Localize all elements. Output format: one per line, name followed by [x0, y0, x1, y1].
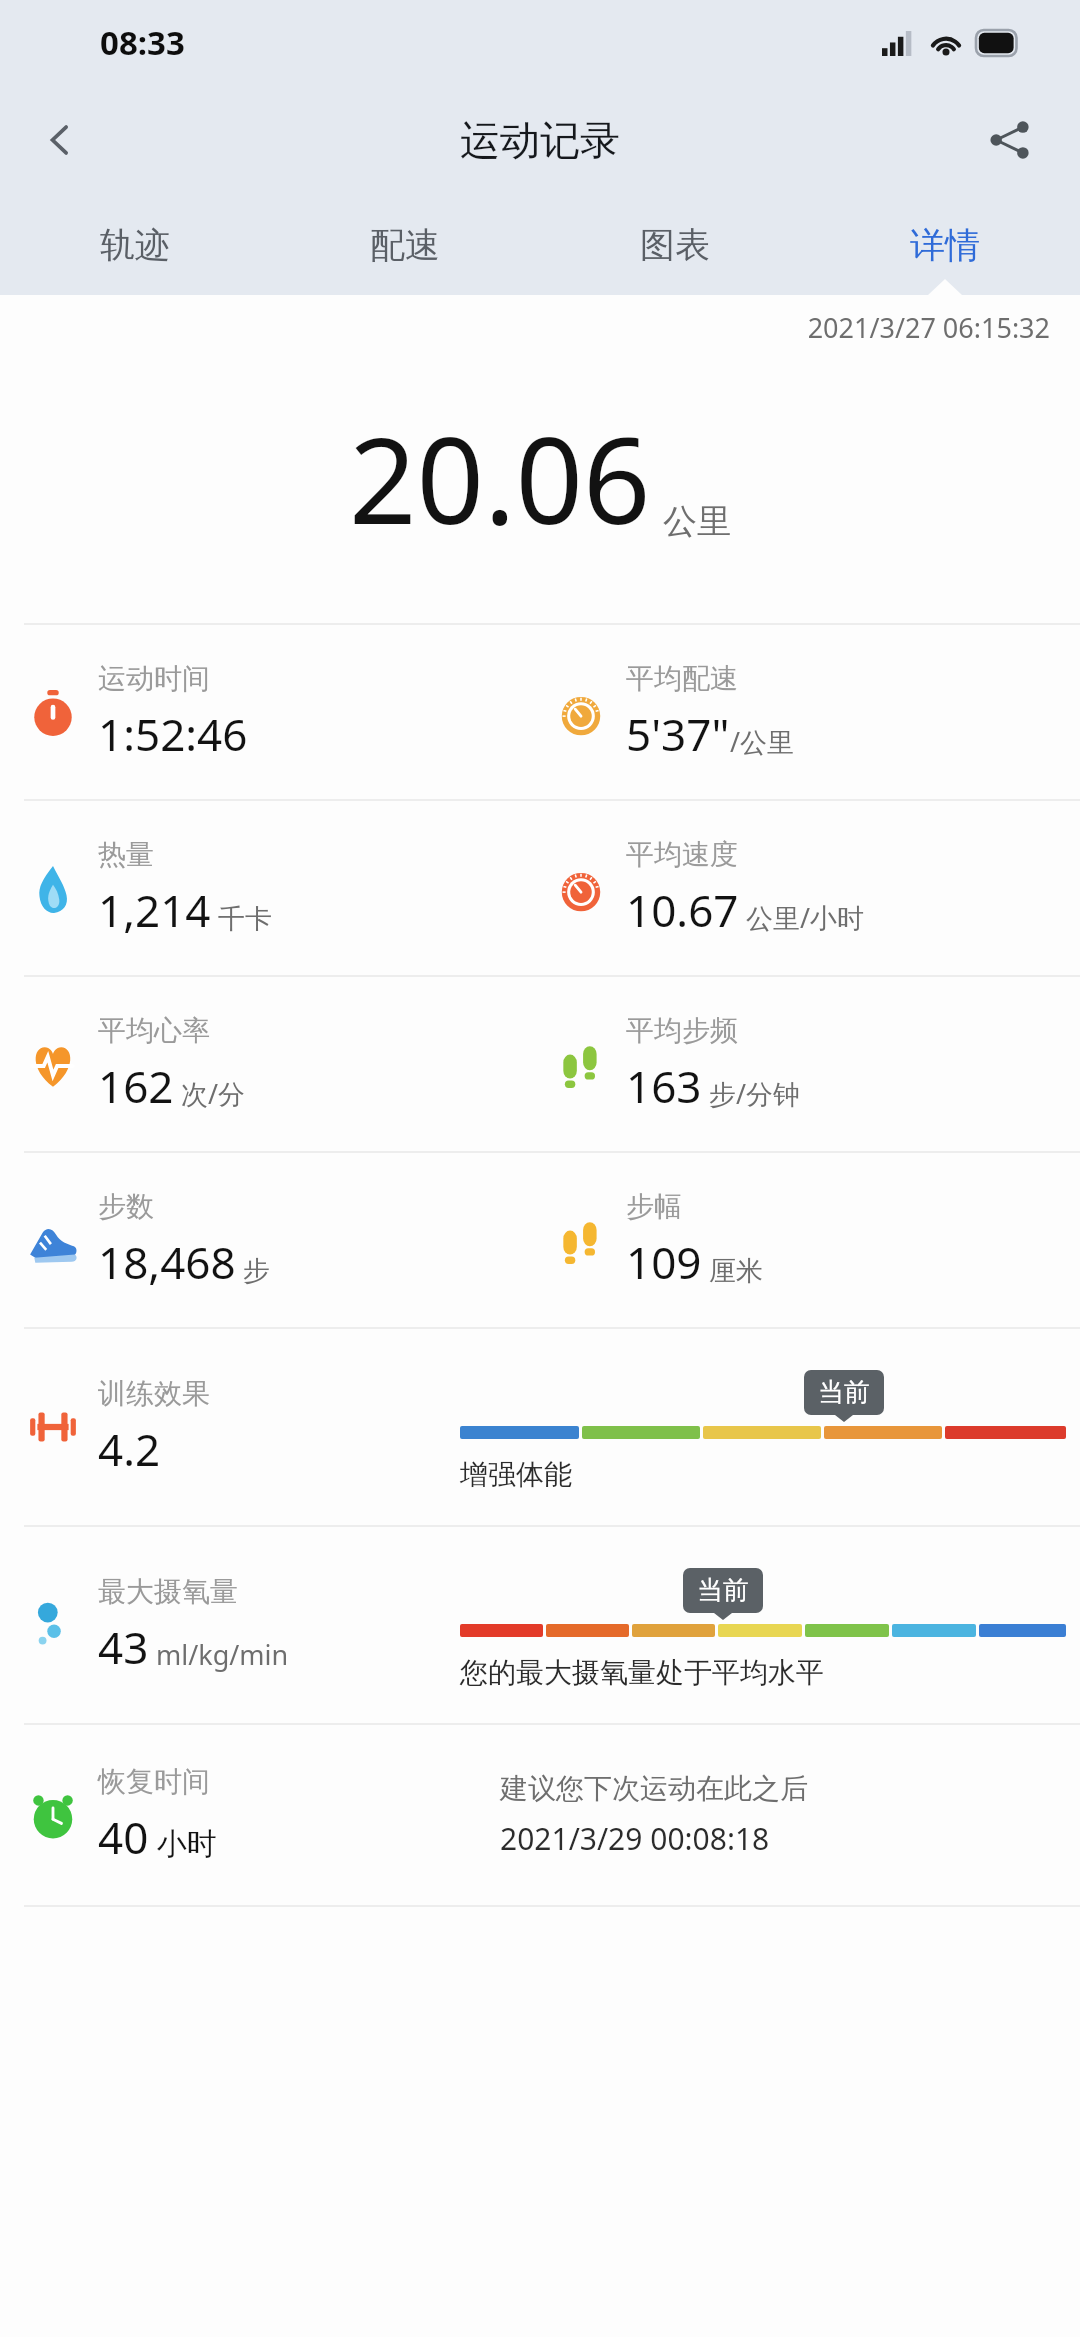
staticText: 步数 — [98, 1189, 154, 1224]
staticText: 163 — [626, 1056, 702, 1116]
button[interactable]: Back — [20, 100, 100, 180]
staticText: 最大摄氧量 — [98, 1574, 238, 1609]
button[interactable]: 轨迹 — [0, 195, 270, 295]
button[interactable]: 运动时间 — [0, 625, 1080, 799]
staticText: 公里/小时 — [739, 899, 865, 936]
staticText: 配速 — [370, 223, 440, 267]
staticText: 公里 — [663, 500, 731, 543]
button[interactable]: 最大摄氧量 — [0, 1527, 1080, 1723]
button[interactable]: 详情 — [810, 195, 1080, 295]
staticText: 千卡 — [211, 899, 273, 936]
staticText: 步/分钟 — [702, 1075, 801, 1112]
staticText: 162 — [98, 1056, 174, 1116]
staticText: 图表 — [640, 223, 710, 267]
button[interactable]: 步数 — [0, 1153, 1080, 1327]
staticText: 热量 — [98, 837, 154, 872]
staticText: 厘米 — [702, 1251, 764, 1288]
staticText: 08:33 — [100, 20, 185, 65]
button[interactable]: Share — [970, 100, 1050, 180]
staticText: 平均心率 — [98, 1013, 210, 1048]
staticText: 43 — [98, 1617, 149, 1677]
staticText: 步 — [236, 1251, 271, 1288]
staticText: 2021/3/29 00:08:18 — [500, 1818, 770, 1859]
button[interactable]: 图表 — [540, 195, 810, 295]
staticText: 平均步频 — [626, 1013, 738, 1048]
button[interactable]: 配速 — [270, 195, 540, 295]
staticText: 运动记录 — [460, 115, 620, 165]
staticText: 小时 — [149, 1822, 217, 1863]
button[interactable]: 恢复时间 — [0, 1725, 1080, 1905]
staticText: 平均速度 — [626, 837, 738, 872]
staticText: 训练效果 — [98, 1376, 210, 1411]
staticText: 轨迹 — [100, 223, 170, 267]
staticText: 当前 — [697, 1574, 749, 1607]
staticText: /公里 — [730, 723, 795, 760]
staticText: 增强体能 — [460, 1457, 572, 1492]
staticText: 次/分 — [174, 1075, 246, 1112]
staticText: 您的最大摄氧量处于平均水平 — [460, 1655, 824, 1690]
staticText: 运动时间 — [98, 661, 210, 696]
staticText: 建议您下次运动在此之后 — [500, 1771, 808, 1806]
staticText: ml/kg/min — [149, 1636, 289, 1673]
staticText: 恢复时间 — [98, 1764, 210, 1799]
staticText: 40 — [98, 1807, 149, 1867]
button[interactable]: 平均心率 — [0, 977, 1080, 1151]
staticText: 18,468 — [98, 1232, 236, 1292]
staticText: 详情 — [910, 223, 980, 267]
staticText: 1:52:46 — [98, 704, 248, 764]
staticText: 20.06 — [349, 398, 651, 559]
button[interactable]: 热量 — [0, 801, 1080, 975]
button[interactable]: 训练效果 — [0, 1329, 1080, 1525]
staticText: 步幅 — [626, 1189, 682, 1224]
staticText: 109 — [626, 1232, 702, 1292]
staticText: 2021/3/27 06:15:32 — [0, 309, 1050, 346]
staticText: 1,214 — [98, 880, 211, 940]
staticText: 4.2 — [98, 1419, 161, 1479]
staticText: 10.67 — [626, 880, 739, 940]
staticText: 当前 — [818, 1376, 870, 1409]
staticText: 5'37" — [626, 704, 730, 764]
staticText: 平均配速 — [626, 661, 738, 696]
